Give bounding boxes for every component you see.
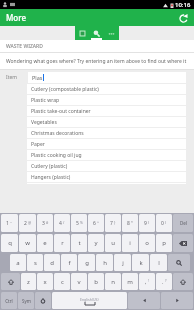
button[interactable]: q [1,234,18,252]
button[interactable]: e [37,234,53,252]
button[interactable]: Plas [28,72,186,83]
button[interactable]: g [78,254,95,271]
staticText: * [131,220,133,225]
button[interactable]: 7 [105,214,121,232]
button[interactable]: Paper [27,139,186,149]
button[interactable]: Plastic cooking oil jug [27,150,186,160]
staticText: g [85,259,89,267]
button[interactable]: back [173,234,193,252]
button[interactable]: 5 [71,214,87,232]
button[interactable]: f [61,254,77,271]
button[interactable]: Sym [18,292,34,309]
staticText: v [77,278,81,286]
staticText: 7 [110,220,113,227]
button[interactable]: Left [128,292,160,309]
staticText: ! [148,278,149,283]
button[interactable]: n [105,273,121,290]
staticText: Paper [31,141,45,148]
button[interactable]: h [96,254,113,271]
button[interactable]: 1 [1,214,18,232]
button[interactable]: 2 [19,214,36,232]
button[interactable]: Del [173,214,193,232]
staticText: t [78,239,81,247]
staticText: m [127,278,133,286]
button[interactable]: Cutlery (compostable plastic) [27,84,186,94]
button[interactable]: o [139,234,155,252]
staticText: Plastic cooking oil jug [31,152,82,159]
staticText: Sym [22,298,31,304]
button[interactable]: More options [104,26,119,40]
button[interactable]: List [75,26,89,40]
staticText: } [114,220,116,225]
button[interactable]: Plastic take-out container [27,106,186,116]
staticText: ~ [10,220,13,225]
staticText: @ [28,220,32,225]
button[interactable]: Cutlery (plastic) [27,161,186,171]
staticText: f [68,259,71,267]
staticText: Cutlery (plastic) [31,163,68,170]
staticText: Hangers (plastic) [31,174,71,181]
staticText: More [6,12,27,23]
button[interactable]: , [139,273,155,290]
button[interactable]: i [122,234,138,252]
staticText: ? [165,278,167,283]
staticText: l [158,259,160,267]
staticText: Christmas decorations [31,130,84,137]
button[interactable]: 6 [88,214,104,232]
staticText: h [103,259,107,267]
button[interactable]: b [88,273,104,290]
button[interactable]: search [168,254,190,271]
button[interactable]: l [150,254,167,271]
staticText: . [162,278,164,285]
button[interactable]: shift [1,273,20,290]
button[interactable]: z [21,273,36,290]
button[interactable]: s [27,254,43,271]
staticText: s [34,259,37,267]
staticText: e [43,239,47,247]
button[interactable]: 4 [54,214,70,232]
staticText: a [16,259,20,267]
button[interactable]: Christmas decorations [27,128,186,138]
button[interactable]: t [71,234,87,252]
button[interactable]: x [37,273,53,290]
button[interactable]: p [156,234,172,252]
button[interactable]: Input method [35,292,51,309]
button[interactable]: shift [173,273,193,290]
button[interactable]: w [19,234,36,252]
button[interactable]: m [122,273,138,290]
button[interactable]: c [54,273,70,290]
button[interactable]: j [114,254,131,271]
staticText: u [111,239,115,247]
button[interactable]: Plastic wrap [27,95,186,105]
button[interactable]: 8 [122,214,138,232]
button[interactable]: 3 [37,214,53,232]
button[interactable]: . [156,273,172,290]
button[interactable]: a [10,254,26,271]
button[interactable]: 9 [139,214,155,232]
staticText: Cutlery (compostable plastic) [31,86,99,93]
staticText: b [94,278,98,286]
button[interactable]: u [105,234,121,252]
button[interactable]: k [132,254,149,271]
button[interactable]: Hangers (plastic) [27,172,186,182]
staticText: 0 [161,220,164,227]
button[interactable]: Space [52,292,127,309]
button[interactable]: 0 [156,214,172,232]
button[interactable]: r [54,234,70,252]
staticText: 8 [127,220,130,227]
staticText: 5 [76,220,79,227]
button[interactable]: Refresh [176,11,190,25]
staticText: Plastic take-out container [31,108,91,115]
button[interactable]: Search [89,26,104,40]
button[interactable]: y [88,234,104,252]
button[interactable]: Right [161,292,193,309]
staticText: Item [6,74,26,81]
button[interactable]: d [44,254,60,271]
button[interactable]: Vegetables [27,117,186,127]
button[interactable]: Ctrl [1,292,17,309]
staticText: ( [148,220,150,225]
staticText: # [46,220,49,225]
button[interactable]: v [71,273,87,290]
